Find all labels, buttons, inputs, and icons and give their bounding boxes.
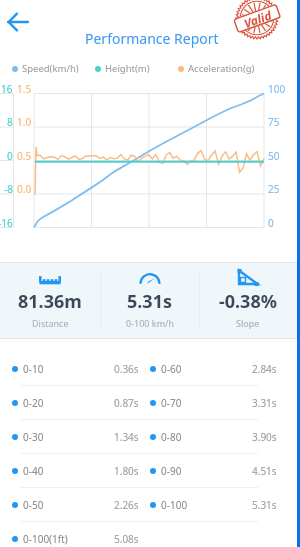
staticText: 0.0 [17,182,32,196]
button[interactable]: 5.31s [100,262,199,339]
staticText: 0-60 [161,362,182,376]
staticText: 0 [268,216,274,230]
staticText: -16 [0,216,13,230]
staticText: 0-10 [23,362,44,376]
staticText: 1.5 [17,82,32,96]
staticText: 0-100 km/h [126,317,174,329]
staticText: 50 [268,149,280,163]
staticText: 2.84s [252,362,277,376]
button[interactable]: Back [5,9,31,35]
button[interactable]: 0-10 [0,352,300,386]
staticText: 0-70 [161,396,182,410]
staticText: Valid [241,6,274,30]
button[interactable]: 0-50 [0,488,300,522]
staticText: 0-40 [23,464,44,478]
staticText: 25 [268,182,280,196]
staticText: 5.31s [252,498,277,512]
button[interactable]: 0-40 [0,454,300,488]
staticText: Slope [236,317,260,329]
staticText: 0-90 [161,464,182,478]
staticText: 0-100 [161,498,188,512]
staticText: 3.31s [252,396,277,410]
staticText: 0-100(1ft) [23,532,68,546]
staticText: Acceleration(g) [188,62,255,75]
staticText: Speed(km/h) [22,62,79,75]
staticText: 8 [7,115,13,129]
button[interactable]: 0-30 [0,420,300,454]
staticText: Height(m) [105,62,150,75]
button[interactable]: -0.38% [199,262,297,339]
staticText: 5.08s [114,532,139,546]
staticText: 75 [268,115,280,129]
staticText: 1.80s [114,464,139,478]
staticText: 0-30 [23,430,44,444]
staticText: 100 [268,82,286,96]
staticText: 4.51s [252,464,277,478]
staticText: 16 [1,82,13,96]
staticText: Distance [32,317,69,329]
button[interactable]: 81.36m [0,262,100,339]
staticText: -8 [4,182,13,196]
staticText: 0-20 [23,396,44,410]
staticText: 0.5 [17,149,32,163]
staticText: 2.26s [114,498,139,512]
staticText: 1.34s [114,430,139,444]
staticText: 81.36m [18,289,82,314]
staticText: 3.90s [252,430,277,444]
button[interactable]: 0-100(1ft) [0,522,300,547]
staticText: 1.0 [17,115,32,129]
staticText: 0.36s [114,362,139,376]
staticText: Performance Report [85,29,219,48]
staticText: -0.38% [219,289,277,314]
staticText: 0-50 [23,498,44,512]
staticText: 0.87s [114,396,139,410]
staticText: 5.31s [127,289,172,314]
staticText: 0 [7,149,13,163]
button[interactable]: 0-20 [0,386,300,420]
staticText: 0-80 [161,430,182,444]
